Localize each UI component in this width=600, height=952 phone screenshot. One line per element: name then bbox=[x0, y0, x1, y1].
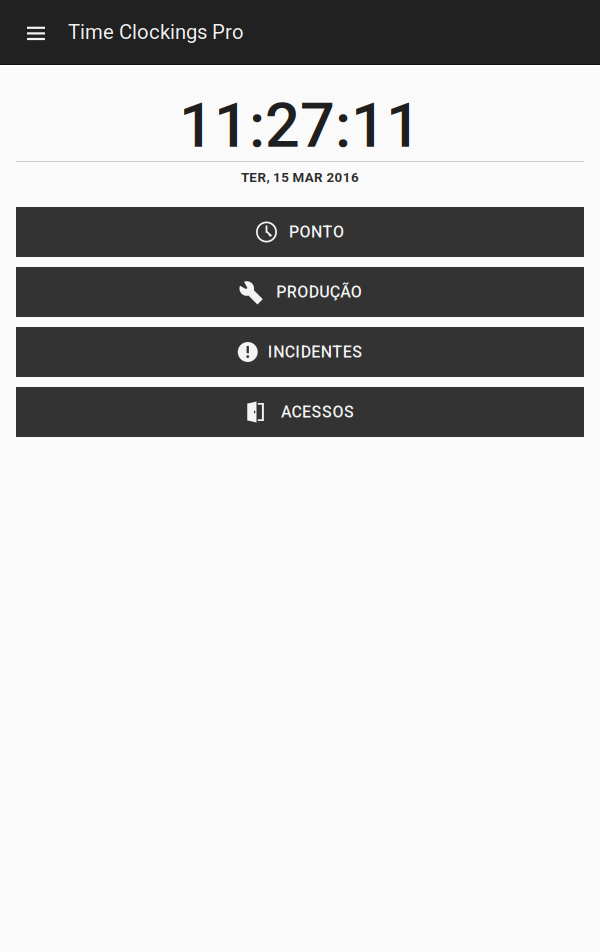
button[interactable]: PONTO bbox=[16, 207, 584, 257]
staticText: Time Clockings Pro bbox=[68, 20, 244, 44]
button[interactable]: Menu bbox=[0, 0, 54, 64]
button[interactable]: PRODUÇÃO bbox=[16, 267, 584, 317]
button[interactable]: ACESSOS bbox=[16, 387, 584, 437]
staticText: PONTO bbox=[289, 223, 344, 241]
staticText: INCIDENTES bbox=[268, 343, 362, 361]
staticText: PRODUÇÃO bbox=[276, 283, 362, 301]
staticText: TER, 15 MAR 2016 bbox=[241, 170, 359, 185]
button[interactable]: INCIDENTES bbox=[16, 327, 584, 377]
staticText: 11:27:11 bbox=[179, 90, 421, 162]
staticText: ACESSOS bbox=[281, 403, 354, 421]
